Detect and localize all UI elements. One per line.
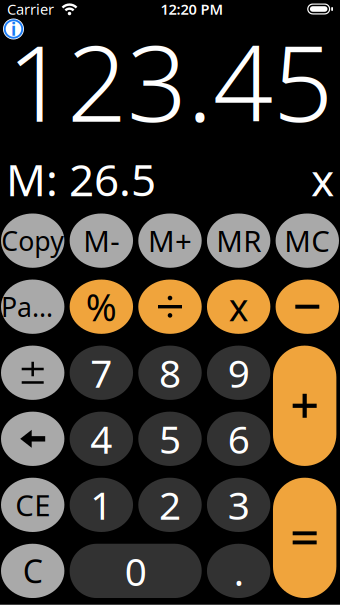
staticText: 12:20 PM (161, 0, 224, 19)
staticText: CE (15, 485, 50, 524)
staticText: 6 (228, 413, 250, 464)
button[interactable]: M- (70, 213, 133, 268)
staticText: MC (284, 221, 330, 260)
staticText: 1 (90, 479, 112, 530)
staticText: 9 (228, 347, 250, 398)
staticText: 0 (125, 545, 147, 596)
staticText: M- (83, 221, 119, 260)
button[interactable]: CE (1, 478, 64, 532)
button[interactable]: 2 (138, 478, 202, 532)
staticText: 4 (90, 413, 112, 464)
button[interactable]: Info (0, 18, 27, 40)
button[interactable]: MC (276, 213, 339, 268)
staticText: MR (216, 221, 261, 260)
staticText: x (229, 282, 249, 331)
staticText: 123.45 (7, 11, 333, 151)
staticText: . (234, 545, 244, 596)
button[interactable]: 3 (207, 478, 270, 532)
button[interactable]: Equals (273, 478, 336, 598)
staticText: 2 (159, 479, 181, 530)
staticText: Copy (1, 223, 64, 258)
staticText: 8 (159, 347, 181, 398)
staticText: i (11, 17, 16, 40)
button[interactable]: 0 (70, 544, 202, 598)
button[interactable]: Copy (1, 213, 64, 268)
staticText: 5 (159, 413, 181, 464)
staticText: x (311, 150, 334, 208)
button[interactable]: x (207, 280, 270, 334)
staticText: % (86, 282, 117, 331)
button[interactable]: 4 (70, 412, 133, 466)
button[interactable]: 9 (207, 346, 270, 400)
button[interactable]: M+ (138, 213, 202, 268)
button[interactable]: Plus or minus (1, 346, 64, 400)
staticText (54, 0, 62, 19)
button[interactable]: % (70, 280, 133, 334)
button[interactable]: 1 (70, 478, 133, 532)
staticText: Paste (1, 289, 64, 324)
staticText: 7 (90, 347, 112, 398)
staticText: M: 26.5 (6, 150, 156, 208)
button[interactable]: Plus (273, 346, 336, 466)
button[interactable]: Minus (276, 280, 339, 334)
button[interactable]: MR (207, 213, 270, 268)
button[interactable]: 6 (207, 412, 270, 466)
button[interactable]: 7 (70, 346, 133, 400)
button[interactable]: 8 (138, 346, 202, 400)
staticText: M+ (148, 221, 192, 260)
button[interactable]: Backspace (1, 412, 64, 466)
staticText: Carrier (7, 0, 54, 19)
button[interactable]: 5 (138, 412, 202, 466)
button[interactable]: x (301, 150, 336, 208)
button[interactable]: Divide (138, 280, 202, 334)
staticText: C (23, 550, 43, 592)
staticText: 3 (228, 479, 250, 530)
button[interactable]: . (207, 544, 270, 598)
button[interactable]: Paste (1, 280, 64, 334)
button[interactable]: C (1, 544, 64, 598)
